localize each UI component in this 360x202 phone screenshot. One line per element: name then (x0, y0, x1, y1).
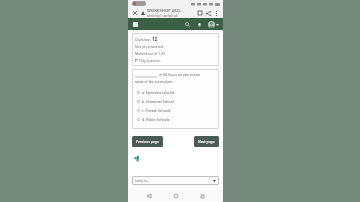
staticText: b. Grammar School (142, 99, 174, 104)
staticText: Jump to... (135, 178, 151, 183)
staticText: in UK focus on one or two (159, 72, 200, 77)
staticText: c. Private Schools (142, 108, 171, 113)
staticText: Marked out of 1.00 (135, 51, 166, 56)
button[interactable]: Menu (131, 20, 140, 29)
staticText: Previous page (136, 139, 159, 144)
button[interactable]: a. Specialist schools (135, 88, 216, 97)
staticText: 12 (152, 36, 158, 42)
button[interactable]: c. Private Schools (135, 106, 216, 115)
button[interactable]: Tabs (196, 9, 204, 17)
button[interactable]: Share (204, 9, 212, 17)
button[interactable]: Recent apps (197, 191, 207, 201)
button[interactable]: Search (183, 20, 192, 29)
staticText: a. Specialist schools (142, 90, 175, 95)
staticText: Flag question (139, 58, 161, 63)
button[interactable]: Home (171, 191, 181, 201)
button[interactable]: Flag question (135, 58, 161, 63)
staticText: Question (135, 37, 152, 42)
button[interactable]: Next page (194, 136, 219, 147)
button[interactable]: Notifications (195, 20, 204, 29)
button[interactable]: More options (212, 9, 220, 17)
staticText: workshop1.example.ph (147, 14, 178, 18)
staticText: areas of the curriculum. (135, 79, 173, 84)
staticText: Not yet answered (135, 44, 164, 49)
staticText: Next page (198, 139, 215, 144)
button[interactable]: b. Grammar School (135, 97, 216, 106)
button[interactable]: Account (207, 21, 220, 28)
button[interactable]: Close (131, 9, 139, 17)
button[interactable]: d. Public Schools (135, 115, 216, 124)
staticText: d. Public Schools (142, 117, 170, 122)
button[interactable]: Back (144, 191, 154, 201)
button[interactable]: Previous page (132, 136, 163, 147)
button[interactable]: Jump to... (132, 176, 219, 185)
staticText: WORKSHOP QUI… (147, 8, 184, 14)
